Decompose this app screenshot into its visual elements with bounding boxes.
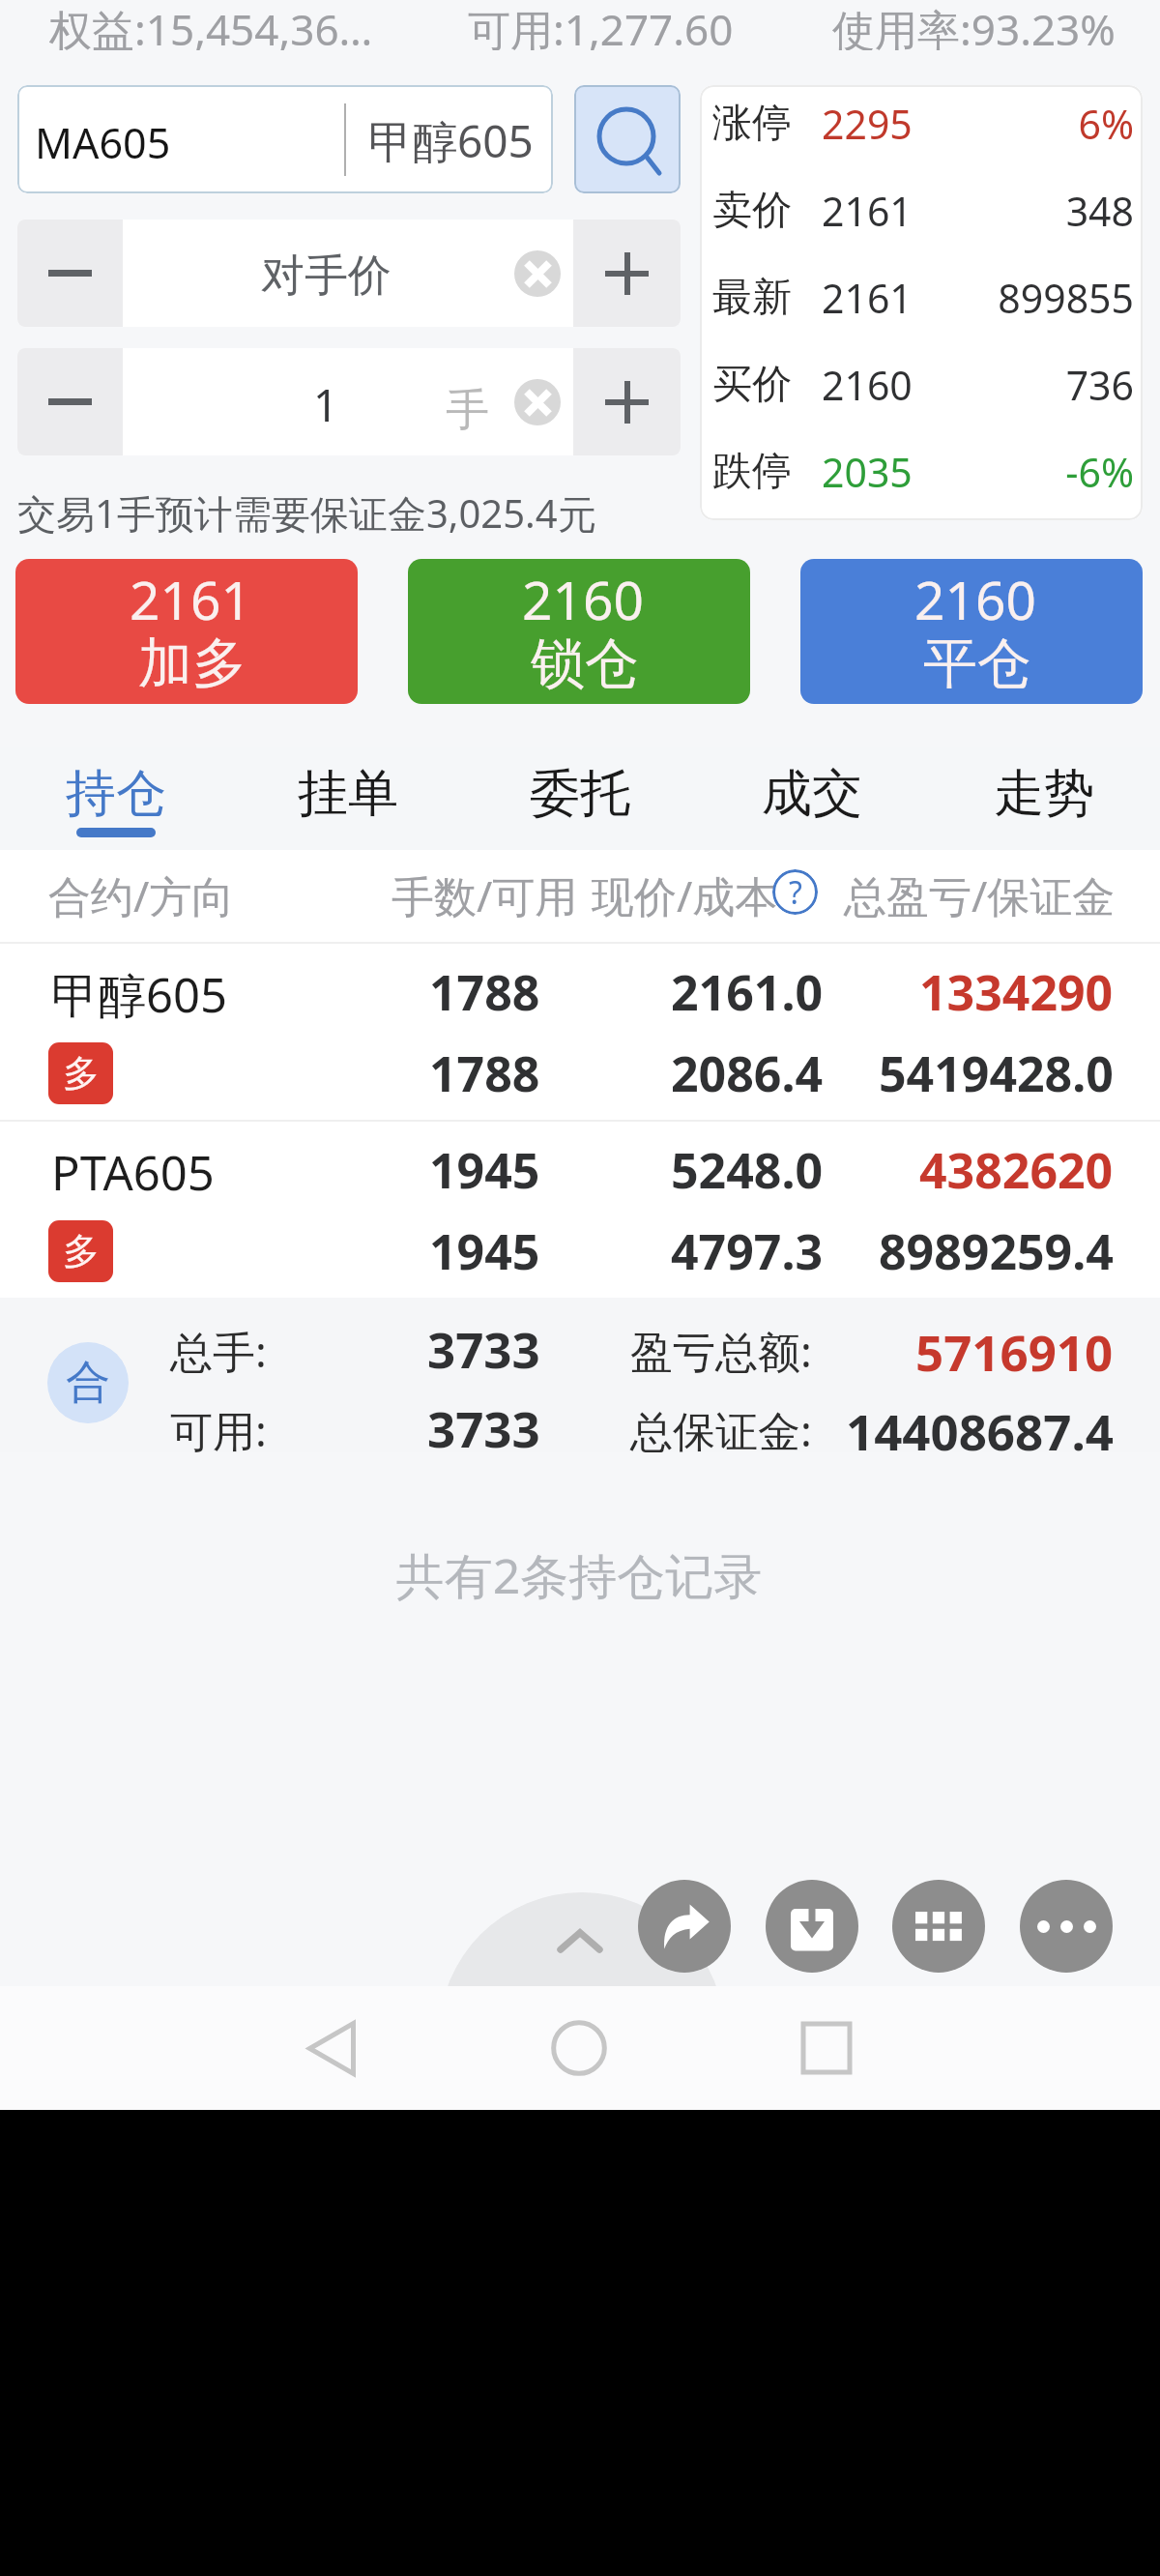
staticText: 可用:1,277.60 bbox=[468, 0, 734, 50]
staticText: -6% bbox=[913, 445, 1134, 499]
staticText: 走势 bbox=[994, 762, 1094, 826]
staticText: 1 bbox=[313, 375, 338, 434]
staticText: 2035 bbox=[822, 445, 913, 499]
button[interactable]: Clear bbox=[514, 250, 561, 297]
staticText: 2161 bbox=[822, 184, 913, 238]
button[interactable]: 2161 bbox=[15, 559, 358, 704]
staticText: 3733 bbox=[427, 1394, 540, 1461]
button[interactable]: 甲醇605 bbox=[0, 942, 1160, 1120]
staticText: PTA605 bbox=[51, 1140, 215, 1205]
staticText: 2160 bbox=[914, 563, 1036, 635]
staticText: 跌停 bbox=[712, 447, 792, 497]
button[interactable]: 2160 bbox=[800, 559, 1143, 704]
staticText: ? bbox=[789, 871, 802, 914]
staticText: 2160 bbox=[822, 358, 913, 412]
button[interactable]: Increase bbox=[573, 220, 681, 327]
staticText: 平仓 bbox=[923, 629, 1031, 698]
staticText: 交易1手预计需要保证金3,025.4元 bbox=[17, 486, 596, 540]
button[interactable]: Share bbox=[638, 1880, 731, 1973]
staticText: 6% bbox=[913, 97, 1134, 151]
staticText: 899855 bbox=[913, 271, 1134, 325]
staticText: 2086.4 bbox=[671, 1040, 824, 1106]
staticText: 多 bbox=[63, 1050, 100, 1097]
staticText: 2161 bbox=[130, 563, 251, 635]
staticText: 8989259.4 bbox=[879, 1218, 1114, 1284]
staticText: 2161 bbox=[822, 271, 913, 325]
staticText: 共有2条持仓记录 bbox=[0, 1542, 1159, 1608]
button[interactable]: MA605 bbox=[17, 85, 553, 193]
staticText: 手数/可用 bbox=[391, 866, 578, 924]
staticText: 现价/成本 bbox=[592, 866, 778, 924]
button[interactable]: More bbox=[1020, 1880, 1113, 1973]
staticText: 1788 bbox=[429, 959, 540, 1025]
staticText: 甲醇605 bbox=[51, 962, 228, 1027]
button[interactable]: 委托 bbox=[464, 747, 696, 850]
button[interactable]: Home bbox=[516, 1986, 642, 2110]
staticText: 持仓 bbox=[66, 762, 166, 826]
button[interactable]: PTA605 bbox=[0, 1120, 1160, 1298]
staticText: 348 bbox=[913, 184, 1134, 238]
staticText: MA605 bbox=[35, 114, 171, 171]
button[interactable]: Decrease bbox=[17, 220, 123, 327]
button[interactable]: 2160 bbox=[408, 559, 750, 704]
staticText: 1945 bbox=[429, 1218, 540, 1284]
button[interactable]: 挂单 bbox=[232, 747, 464, 850]
staticText: 可用: bbox=[170, 1401, 267, 1459]
staticText: 锁仓 bbox=[531, 629, 639, 698]
staticText: 成交 bbox=[762, 762, 862, 826]
staticText: 总手: bbox=[170, 1322, 267, 1380]
staticText: 736 bbox=[913, 358, 1134, 412]
button[interactable]: 成交 bbox=[696, 747, 928, 850]
button[interactable]: Decrease bbox=[17, 348, 123, 455]
staticText: 加多 bbox=[138, 629, 246, 698]
button[interactable]: 走势 bbox=[928, 747, 1160, 850]
staticText: 5716910 bbox=[915, 1318, 1114, 1385]
staticText: 5419428.0 bbox=[879, 1040, 1114, 1106]
staticText: 挂单 bbox=[298, 762, 398, 826]
button[interactable]: Apps bbox=[892, 1880, 985, 1973]
staticText: 权益:15,454,36… bbox=[49, 0, 373, 50]
other: Share bbox=[657, 1899, 711, 1953]
staticText: 1945 bbox=[429, 1137, 540, 1203]
staticText: 盈亏总额: bbox=[630, 1322, 812, 1380]
staticText: 1788 bbox=[429, 1040, 540, 1106]
staticText: 对手价 bbox=[261, 249, 391, 304]
button[interactable]: Recents bbox=[764, 1986, 889, 2110]
button[interactable]: 持仓 bbox=[0, 747, 232, 850]
staticText: 委托 bbox=[530, 762, 630, 826]
staticText: 合 bbox=[66, 1355, 110, 1411]
staticText: 3733 bbox=[427, 1315, 540, 1382]
staticText: 总盈亏/保证金 bbox=[844, 866, 1116, 924]
staticText: 使用率:93.23% bbox=[832, 0, 1116, 50]
staticText: 多 bbox=[63, 1228, 100, 1274]
staticText: 2161.0 bbox=[671, 959, 824, 1025]
staticText: 买价 bbox=[712, 360, 792, 410]
staticText: 2160 bbox=[522, 563, 644, 635]
button[interactable]: Back bbox=[269, 1986, 394, 2110]
staticText: 最新 bbox=[712, 273, 792, 323]
button[interactable]: Download bbox=[766, 1880, 858, 1973]
staticText: 甲醇605 bbox=[368, 110, 534, 171]
staticText: 4382620 bbox=[919, 1137, 1114, 1203]
button[interactable]: Increase bbox=[573, 348, 681, 455]
staticText: 涨停 bbox=[712, 99, 792, 149]
button[interactable]: Help bbox=[772, 869, 818, 915]
staticText: 1334290 bbox=[919, 959, 1114, 1025]
staticText: 合约/方向 bbox=[48, 866, 235, 924]
staticText: 14408687.4 bbox=[846, 1397, 1114, 1464]
staticText: 2295 bbox=[822, 97, 913, 151]
staticText: 4797.3 bbox=[671, 1218, 824, 1284]
staticText: 5248.0 bbox=[671, 1137, 824, 1203]
staticText: 总保证金: bbox=[630, 1401, 812, 1459]
button[interactable]: Clear bbox=[514, 379, 561, 425]
staticText: 卖价 bbox=[712, 186, 792, 236]
button[interactable]: Search bbox=[574, 85, 681, 193]
staticText: 手 bbox=[446, 383, 489, 438]
